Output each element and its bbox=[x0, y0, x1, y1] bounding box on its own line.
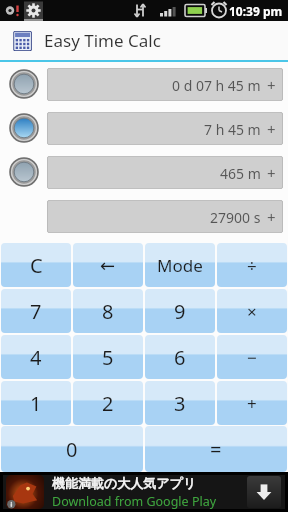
staticText: + bbox=[267, 75, 276, 95]
staticText: 10:39 pm bbox=[229, 3, 283, 19]
button[interactable]: 1 bbox=[1, 381, 71, 425]
staticText: C bbox=[30, 252, 43, 279]
button[interactable]: 0 bbox=[1, 426, 143, 472]
staticText: + bbox=[267, 163, 276, 183]
button[interactable]: ÷ bbox=[217, 243, 287, 287]
button[interactable]: 5 bbox=[73, 335, 143, 379]
staticText: 2 bbox=[102, 390, 114, 417]
button[interactable]: C bbox=[1, 243, 71, 287]
staticText: 6 bbox=[174, 344, 186, 371]
staticText: + bbox=[247, 392, 257, 415]
staticText: ÷ bbox=[247, 254, 257, 277]
staticText: 4 bbox=[30, 344, 42, 371]
button[interactable]: ← bbox=[73, 243, 143, 287]
staticText: 7 bbox=[30, 298, 42, 325]
button[interactable]: × bbox=[217, 289, 287, 333]
staticText: 9 bbox=[174, 298, 186, 325]
button[interactable]: Select unit bbox=[0, 150, 47, 194]
button[interactable]: 6 bbox=[145, 335, 215, 379]
staticText: × bbox=[247, 300, 257, 323]
staticText: ← bbox=[100, 255, 116, 276]
staticText: Download from Google Play bbox=[52, 493, 217, 509]
staticText: 8 bbox=[102, 298, 114, 325]
staticText: 機能満載の大人気アプリ bbox=[52, 475, 197, 491]
staticText: Easy Time Calc bbox=[44, 29, 161, 52]
button[interactable]: 2 bbox=[73, 381, 143, 425]
button[interactable]: 0 d 07 h 45 m bbox=[47, 68, 283, 101]
staticText: − bbox=[247, 346, 257, 369]
button[interactable]: + bbox=[217, 381, 287, 425]
staticText: + bbox=[267, 207, 276, 227]
button[interactable]: Select unit bbox=[0, 62, 47, 106]
staticText: 7 h 45 m bbox=[204, 120, 261, 139]
staticText: 5 bbox=[102, 344, 114, 371]
staticText: 3 bbox=[174, 390, 186, 417]
button[interactable]: 465 m bbox=[47, 156, 283, 189]
button[interactable]: 8 bbox=[73, 289, 143, 333]
staticText: 0 bbox=[66, 436, 78, 463]
button[interactable]: Mode bbox=[145, 243, 215, 287]
button[interactable]: − bbox=[217, 335, 287, 379]
button[interactable]: 27900 s bbox=[47, 200, 283, 233]
button[interactable]: = bbox=[145, 426, 287, 472]
button[interactable]: 9 bbox=[145, 289, 215, 333]
button[interactable]: 3 bbox=[145, 381, 215, 425]
button[interactable]: Download bbox=[247, 476, 281, 508]
staticText: 465 m bbox=[220, 164, 261, 183]
button[interactable]: Select unit bbox=[0, 106, 47, 150]
staticText: = bbox=[210, 436, 222, 463]
staticText: 0 d 07 h 45 m bbox=[172, 76, 261, 95]
button[interactable]: 4 bbox=[1, 335, 71, 379]
staticText: 1 bbox=[30, 390, 42, 417]
staticText: 27900 s bbox=[210, 208, 261, 227]
button[interactable]: 7 h 45 m bbox=[47, 112, 283, 145]
staticText: + bbox=[267, 119, 276, 139]
button[interactable]: 7 bbox=[1, 289, 71, 333]
staticText: Mode bbox=[157, 254, 203, 277]
button[interactable]: Advertisement bbox=[3, 475, 285, 509]
